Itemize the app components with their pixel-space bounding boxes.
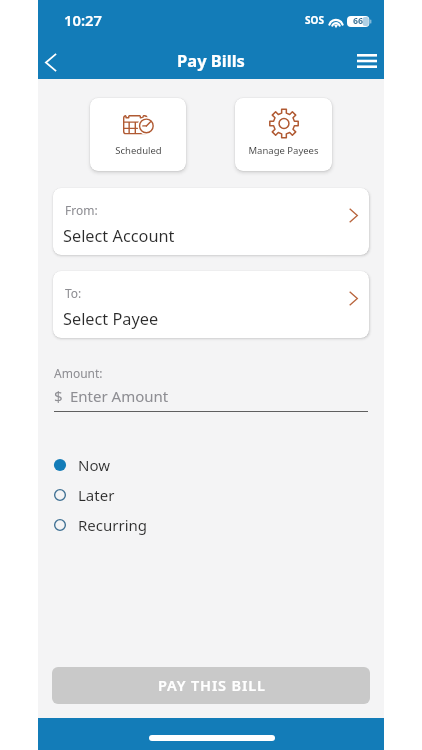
staticText: Later bbox=[78, 485, 115, 505]
button[interactable]: Back bbox=[38, 38, 72, 79]
staticText: Scheduled bbox=[115, 144, 162, 157]
button[interactable]: Later bbox=[38, 480, 384, 510]
button[interactable]: Menu bbox=[346, 38, 384, 79]
staticText: 66 bbox=[353, 15, 364, 27]
staticText: Pay Bills bbox=[177, 49, 245, 71]
staticText: To: bbox=[65, 285, 82, 301]
staticText: Select Payee bbox=[63, 308, 159, 330]
button[interactable]: To: bbox=[53, 271, 369, 338]
staticText: Recurring bbox=[78, 515, 148, 535]
button[interactable]: Manage Payees bbox=[235, 98, 332, 171]
staticText: Manage Payees bbox=[248, 144, 319, 157]
staticText: From: bbox=[65, 202, 98, 218]
staticText: 10:27 bbox=[64, 10, 102, 30]
staticText: Select Account bbox=[63, 225, 175, 247]
staticText: SOS bbox=[305, 13, 324, 27]
staticText: Amount: bbox=[54, 365, 103, 381]
button[interactable]: From: bbox=[53, 188, 369, 255]
button[interactable]: Now bbox=[38, 450, 384, 480]
staticText: PAY THIS BILL bbox=[158, 675, 266, 695]
staticText: Now bbox=[78, 455, 110, 475]
button[interactable]: Recurring bbox=[38, 510, 384, 540]
staticText: $ bbox=[54, 386, 63, 406]
button[interactable]: PAY THIS BILL bbox=[52, 667, 370, 704]
staticText: Enter Amount bbox=[70, 386, 169, 406]
button[interactable]: Scheduled bbox=[90, 98, 186, 171]
